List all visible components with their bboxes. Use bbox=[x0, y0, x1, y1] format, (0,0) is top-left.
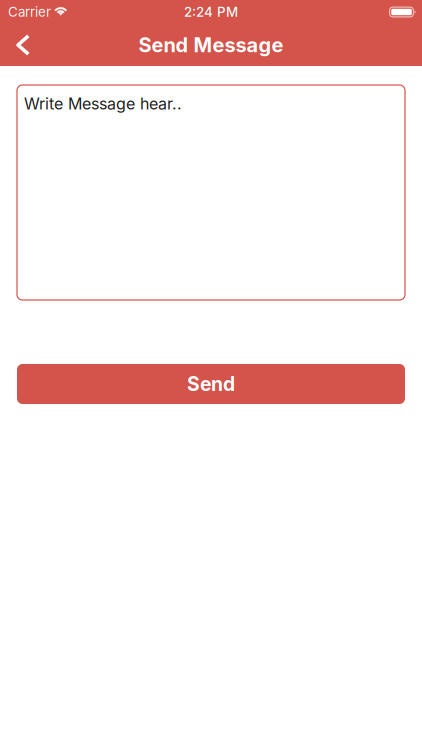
staticText: Send bbox=[187, 372, 235, 396]
button[interactable]: Send bbox=[17, 364, 405, 404]
staticText: Send Message bbox=[138, 33, 283, 57]
button[interactable]: Write Message hear.. bbox=[17, 85, 405, 300]
staticText: Write Message hear.. bbox=[24, 94, 182, 113]
staticText: Carrier bbox=[8, 4, 51, 20]
staticText: 2:24 PM bbox=[184, 4, 238, 20]
button[interactable]: Back bbox=[0, 24, 48, 66]
